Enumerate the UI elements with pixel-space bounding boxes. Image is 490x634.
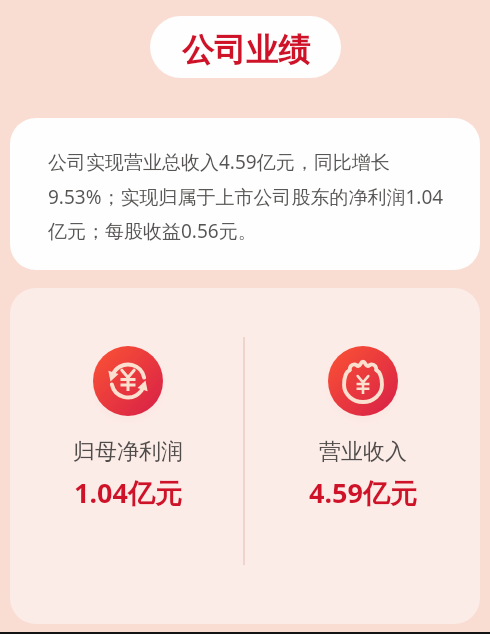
button[interactable]: 公司业绩 [150,16,341,78]
staticText: 公司实现营业总收入4.59亿元，同比增长9.53%；实现归属于上市公司股东的净利… [48,149,448,244]
button[interactable]: Revenue [245,288,480,511]
button[interactable]: 公司实现营业总收入4.59亿元，同比增长9.53%；实现归属于上市公司股东的净利… [10,118,480,270]
other: Revenue [328,346,398,416]
button[interactable]: Net profit [10,288,245,511]
other: Net profit [93,346,163,416]
staticText: 4.59亿元 [309,474,417,511]
staticText: 公司业绩 [182,30,310,70]
staticText: 1.04亿元 [74,474,182,511]
staticText: 营业收入 [319,438,407,466]
staticText: 归母净利润 [73,438,183,466]
